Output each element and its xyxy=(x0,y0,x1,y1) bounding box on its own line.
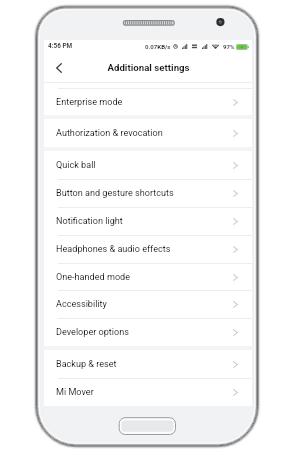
staticText: 0.07KB/s xyxy=(145,43,171,50)
button[interactable]: Backup & reset xyxy=(44,350,252,378)
button[interactable]: Button and gesture shortcuts xyxy=(44,179,252,207)
staticText: Mi Mover xyxy=(56,387,94,398)
staticText: 97% xyxy=(223,43,235,50)
staticText: One-handed mode xyxy=(56,272,131,283)
button[interactable]: Headphones & audio effects xyxy=(44,235,252,263)
staticText: Backup & reset xyxy=(56,359,117,370)
button[interactable]: Back xyxy=(44,52,74,83)
staticText: Button and gesture shortcuts xyxy=(56,188,174,199)
button[interactable]: Enterprise mode xyxy=(44,88,252,116)
button[interactable]: Notification light xyxy=(44,207,252,235)
button[interactable]: Accessibility xyxy=(44,290,252,318)
button[interactable]: One-handed mode xyxy=(44,263,252,291)
staticText: Additional settings xyxy=(107,62,190,73)
staticText: Notification light xyxy=(56,216,123,227)
staticText: Enterprise mode xyxy=(56,97,123,108)
staticText: 4:56 PM xyxy=(48,42,73,50)
button[interactable]: Mi Mover xyxy=(44,378,252,406)
staticText: Accessibility xyxy=(56,299,107,310)
staticText: Authorization & revocation xyxy=(56,128,163,139)
button[interactable]: Authorization & revocation xyxy=(44,119,252,147)
button[interactable]: Developer options xyxy=(44,318,252,346)
staticText: Headphones & audio effects xyxy=(56,244,171,255)
staticText: Developer options xyxy=(56,327,129,338)
button[interactable]: Quick ball xyxy=(44,151,252,179)
staticText: Quick ball xyxy=(56,160,96,171)
